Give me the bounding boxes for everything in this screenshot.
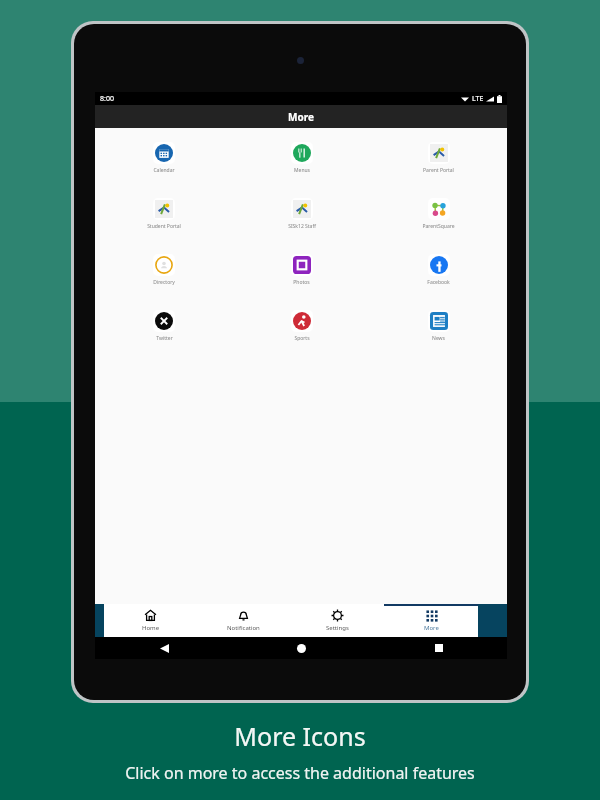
button[interactable]: Menus (233, 142, 370, 198)
staticText: Twitter (156, 335, 173, 342)
button[interactable]: Sports (233, 310, 370, 366)
button[interactable]: Photos (233, 254, 370, 310)
staticText: Notification (227, 624, 260, 632)
staticText: More (424, 624, 439, 632)
staticText: Directory (153, 279, 175, 286)
staticText: Facebook (427, 279, 450, 286)
staticText: Photos (293, 279, 310, 286)
button[interactable]: Directory (95, 254, 233, 310)
button[interactable]: Facebook (370, 254, 507, 310)
button[interactable]: ParentSquare (370, 198, 507, 254)
staticText: Parent Portal (423, 167, 454, 174)
staticText: Student Portal (147, 223, 181, 230)
staticText: 8:00 (100, 94, 114, 104)
button[interactable]: Student Portal (95, 198, 233, 254)
button[interactable]: Notification (197, 604, 290, 637)
staticText: Calendar (153, 167, 175, 174)
button[interactable]: More (384, 604, 478, 637)
button[interactable]: News (370, 310, 507, 366)
staticText: More Icons (234, 719, 366, 753)
button[interactable]: Parent Portal (370, 142, 507, 198)
staticText: LTE (472, 94, 484, 104)
staticText: Settings (326, 624, 349, 632)
staticText: News (432, 335, 445, 342)
staticText: More (288, 110, 314, 124)
staticText: Menus (294, 167, 310, 174)
staticText: Sports (294, 335, 310, 342)
staticText: ParentSquare (422, 223, 455, 230)
staticText: SISk12 Staff (288, 223, 316, 230)
staticText: Click on more to access the additional f… (125, 762, 475, 784)
staticText: Home (142, 624, 160, 632)
button[interactable]: Home (104, 604, 197, 637)
button[interactable]: Twitter (95, 310, 233, 366)
button[interactable]: Calendar (95, 142, 233, 198)
button[interactable]: Settings (290, 604, 384, 637)
button[interactable]: SISk12 Staff (233, 198, 370, 254)
